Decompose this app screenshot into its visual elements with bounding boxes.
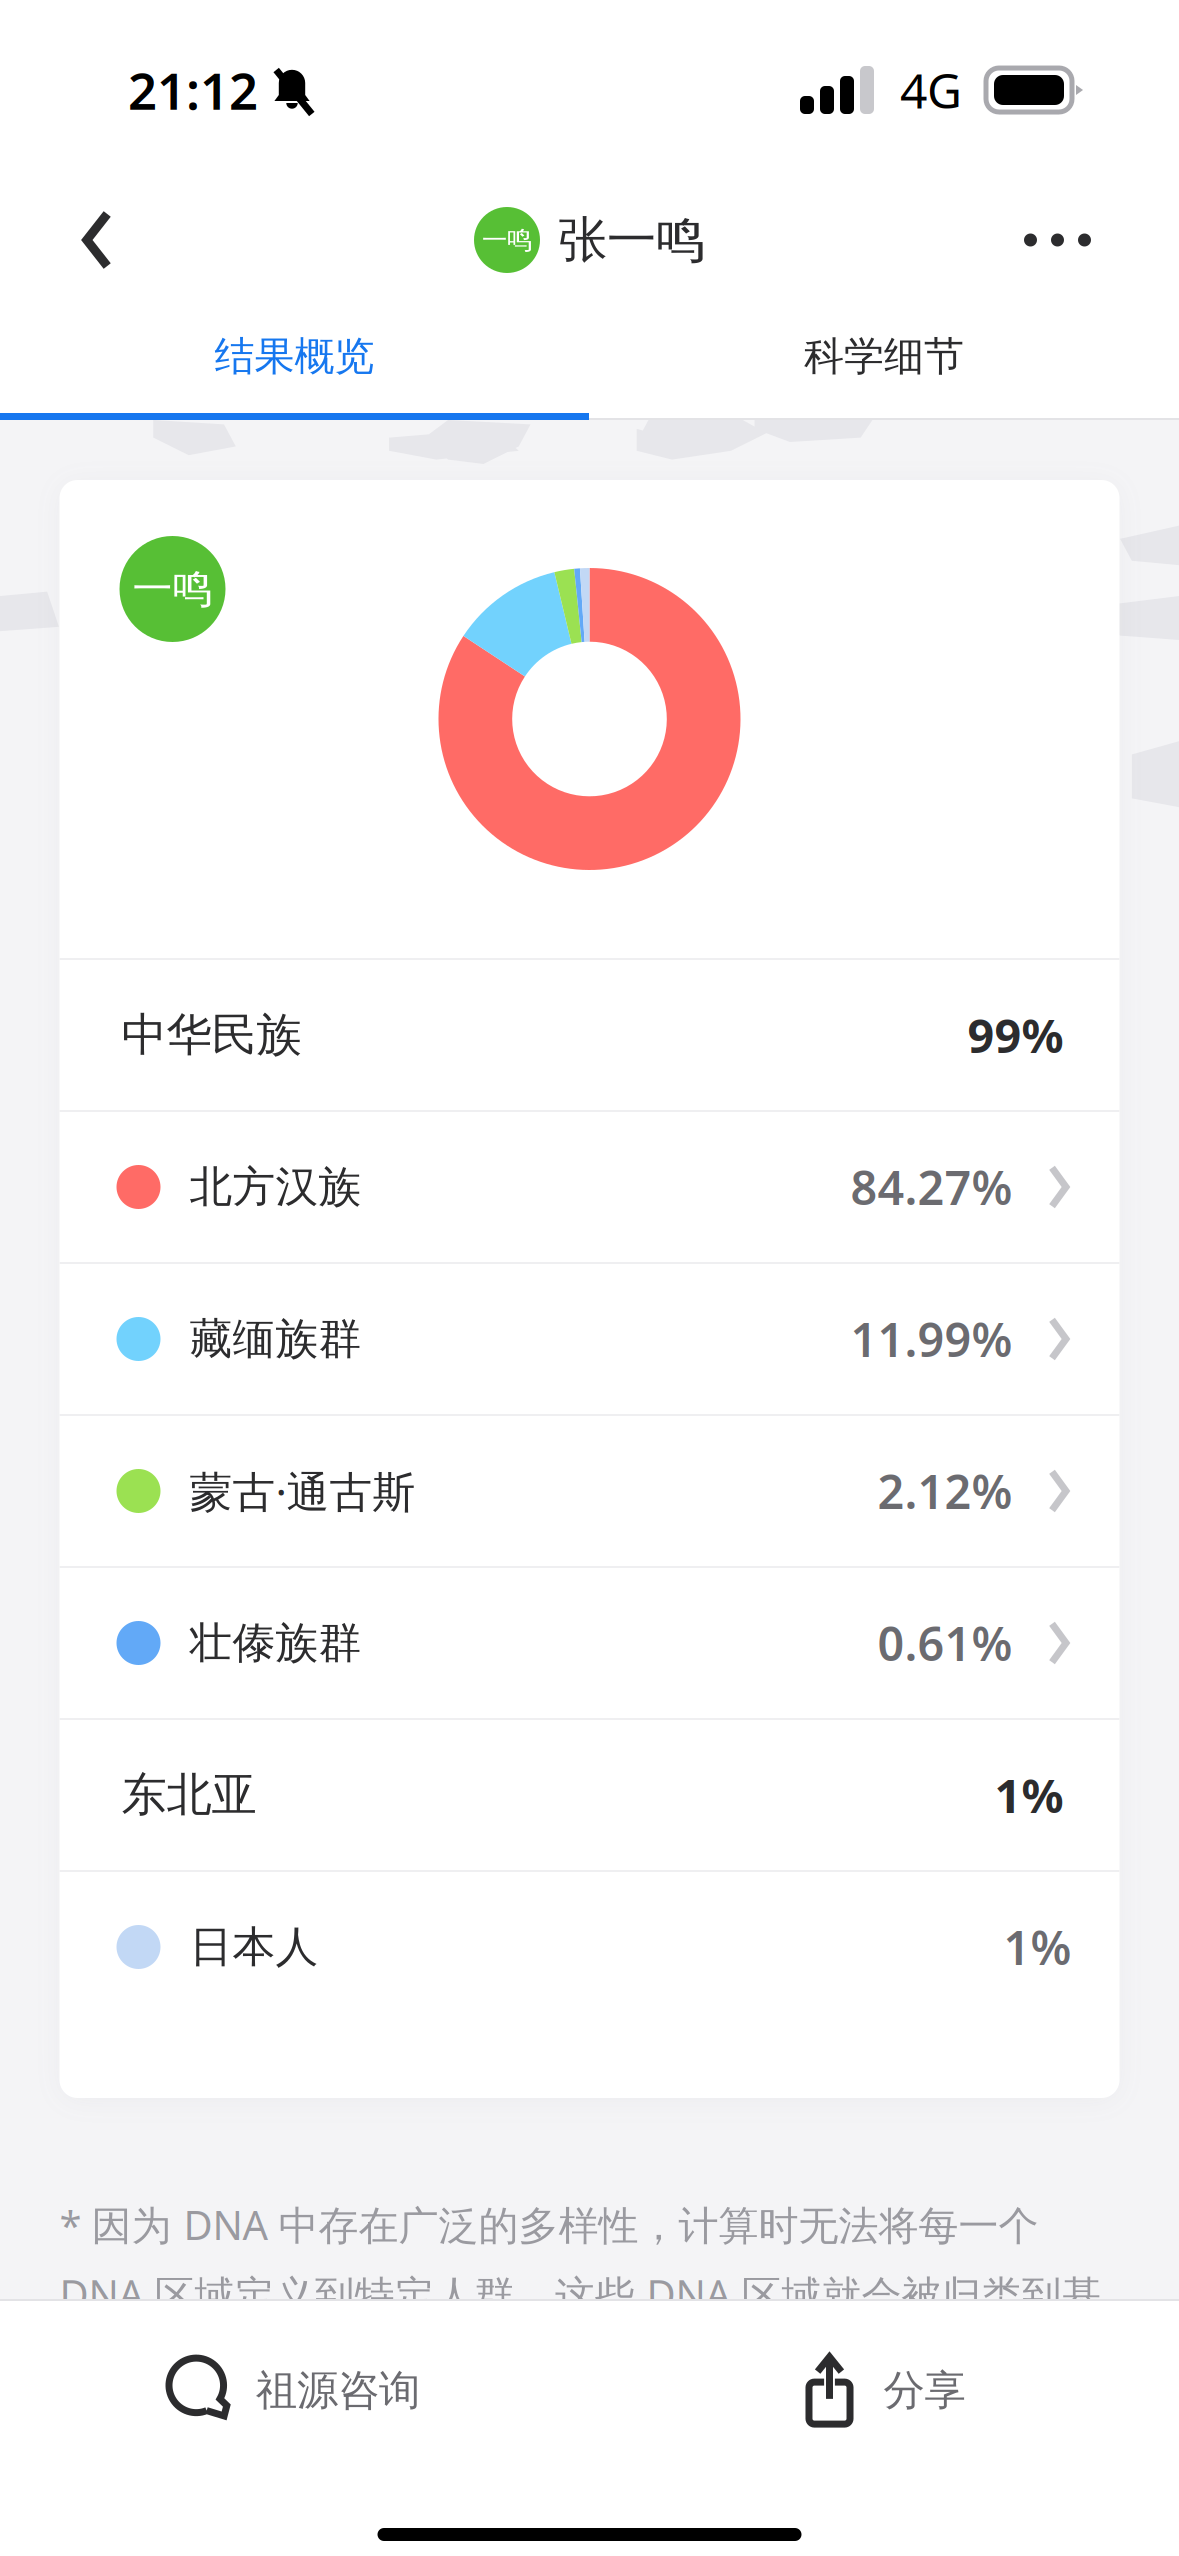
staticText: 北方汉族 xyxy=(189,1161,361,1213)
button[interactable]: 科学细节 xyxy=(589,300,1179,413)
staticText: 11.99% xyxy=(850,1308,1012,1370)
staticText: 藏缅族群 xyxy=(189,1313,361,1365)
staticText: 21:12 xyxy=(128,56,258,124)
staticText: 祖源咨询 xyxy=(256,2365,420,2416)
button[interactable]: 祖源咨询 xyxy=(0,2310,589,2470)
button[interactable]: Back xyxy=(40,179,154,301)
staticText: 蒙古·通古斯 xyxy=(189,1463,415,1519)
staticText: 99% xyxy=(967,1004,1063,1066)
staticText: 分享 xyxy=(883,2365,965,2416)
staticText: 4G xyxy=(900,58,962,122)
staticText: 结果概览 xyxy=(214,332,374,381)
staticText: 东北亚 xyxy=(121,1767,256,1823)
staticText: 张一鸣 xyxy=(558,210,705,270)
button[interactable]: More xyxy=(984,183,1131,296)
button[interactable]: 壮傣族群 xyxy=(59,1568,1119,1718)
staticText: 1% xyxy=(1003,1916,1071,1978)
button[interactable]: 分享 xyxy=(589,2310,1179,2470)
staticText: 一鸣 xyxy=(482,224,532,255)
staticText: 壮傣族群 xyxy=(189,1617,361,1669)
staticText: 日本人 xyxy=(189,1921,318,1973)
button[interactable]: 藏缅族群 xyxy=(59,1264,1119,1414)
staticText: 2.12% xyxy=(877,1460,1012,1522)
staticText: 1% xyxy=(994,1764,1063,1826)
staticText: 84.27% xyxy=(850,1156,1012,1218)
staticText: 一鸣 xyxy=(132,564,212,613)
staticText: DNA 区域定义到特定人群，这些 DNA 区域就会被归类到基 xyxy=(59,2267,1101,2320)
button[interactable]: 北方汉族 xyxy=(59,1112,1119,1262)
staticText: 中华民族 xyxy=(121,1007,301,1063)
staticText: * 因为 DNA 中存在广泛的多样性，计算时无法将每一个 xyxy=(59,2198,1038,2251)
button[interactable]: 结果概览 xyxy=(0,300,589,413)
button[interactable]: 蒙古·通古斯 xyxy=(59,1416,1119,1566)
staticText: 科学细节 xyxy=(804,332,964,381)
button[interactable]: 日本人 xyxy=(59,1872,1119,2022)
staticText: 0.61% xyxy=(877,1612,1012,1674)
